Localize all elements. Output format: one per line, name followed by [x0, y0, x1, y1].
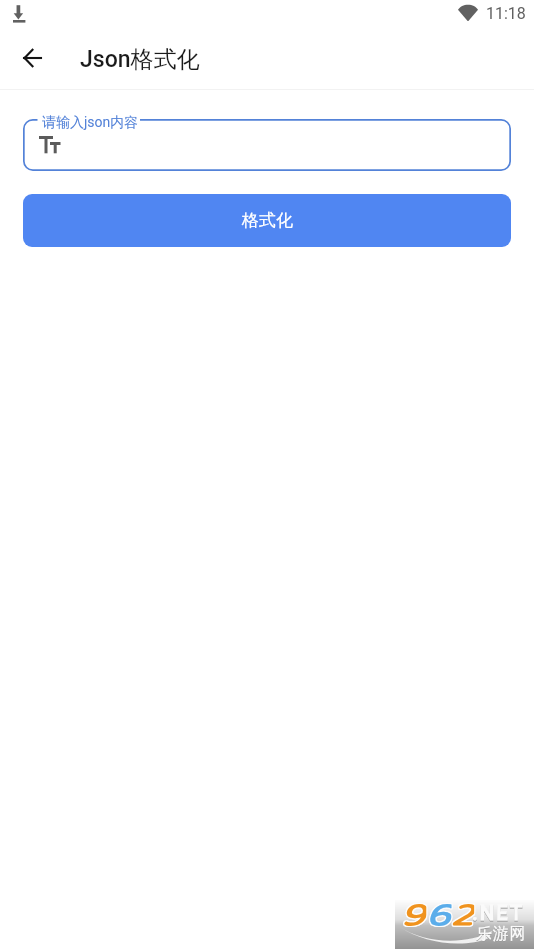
staticText: 6 [427, 889, 453, 938]
staticText: .NET [472, 901, 525, 926]
staticText: 2 [451, 888, 474, 937]
staticText: 请输入json内容 [42, 114, 139, 132]
staticText: 2 [451, 889, 474, 938]
staticText: 2 [452, 888, 475, 937]
button[interactable]: 格式化 [23, 194, 511, 247]
staticText: 6 [425, 888, 451, 937]
staticText: .NET [472, 902, 525, 927]
staticText: 2 [451, 890, 474, 939]
staticText: 2 [450, 890, 473, 939]
staticText: 6 [425, 890, 451, 939]
staticText: 格式化 [242, 210, 293, 231]
other: Download [14, 5, 26, 23]
staticText: 6 [426, 889, 452, 938]
staticText: 2 [450, 888, 473, 937]
other: Wifi [458, 5, 478, 21]
staticText: 9 [401, 890, 426, 939]
staticText: 9 [402, 890, 427, 939]
staticText: 9 [402, 889, 427, 938]
staticText: 6 [425, 889, 451, 938]
staticText: 6 [426, 890, 452, 939]
staticText: 9 [401, 889, 426, 938]
staticText: 9 [400, 888, 425, 937]
staticText: 9 [402, 888, 427, 937]
staticText: 9 [400, 889, 425, 938]
staticText: 6 [427, 890, 453, 939]
staticText: Json格式化 [80, 45, 200, 74]
staticText: 6 [426, 888, 452, 937]
staticText: 9 [400, 890, 425, 939]
staticText: 乐游网 [476, 925, 526, 945]
staticText: 6 [427, 888, 453, 937]
staticText: 乐游网 [476, 924, 526, 944]
staticText: 2 [450, 889, 473, 938]
staticText: 2 [452, 890, 475, 939]
button[interactable]: Back [10, 36, 54, 80]
staticText: 11:18 [486, 4, 526, 23]
staticText: 9 [401, 888, 426, 937]
staticText: 2 [452, 889, 475, 938]
